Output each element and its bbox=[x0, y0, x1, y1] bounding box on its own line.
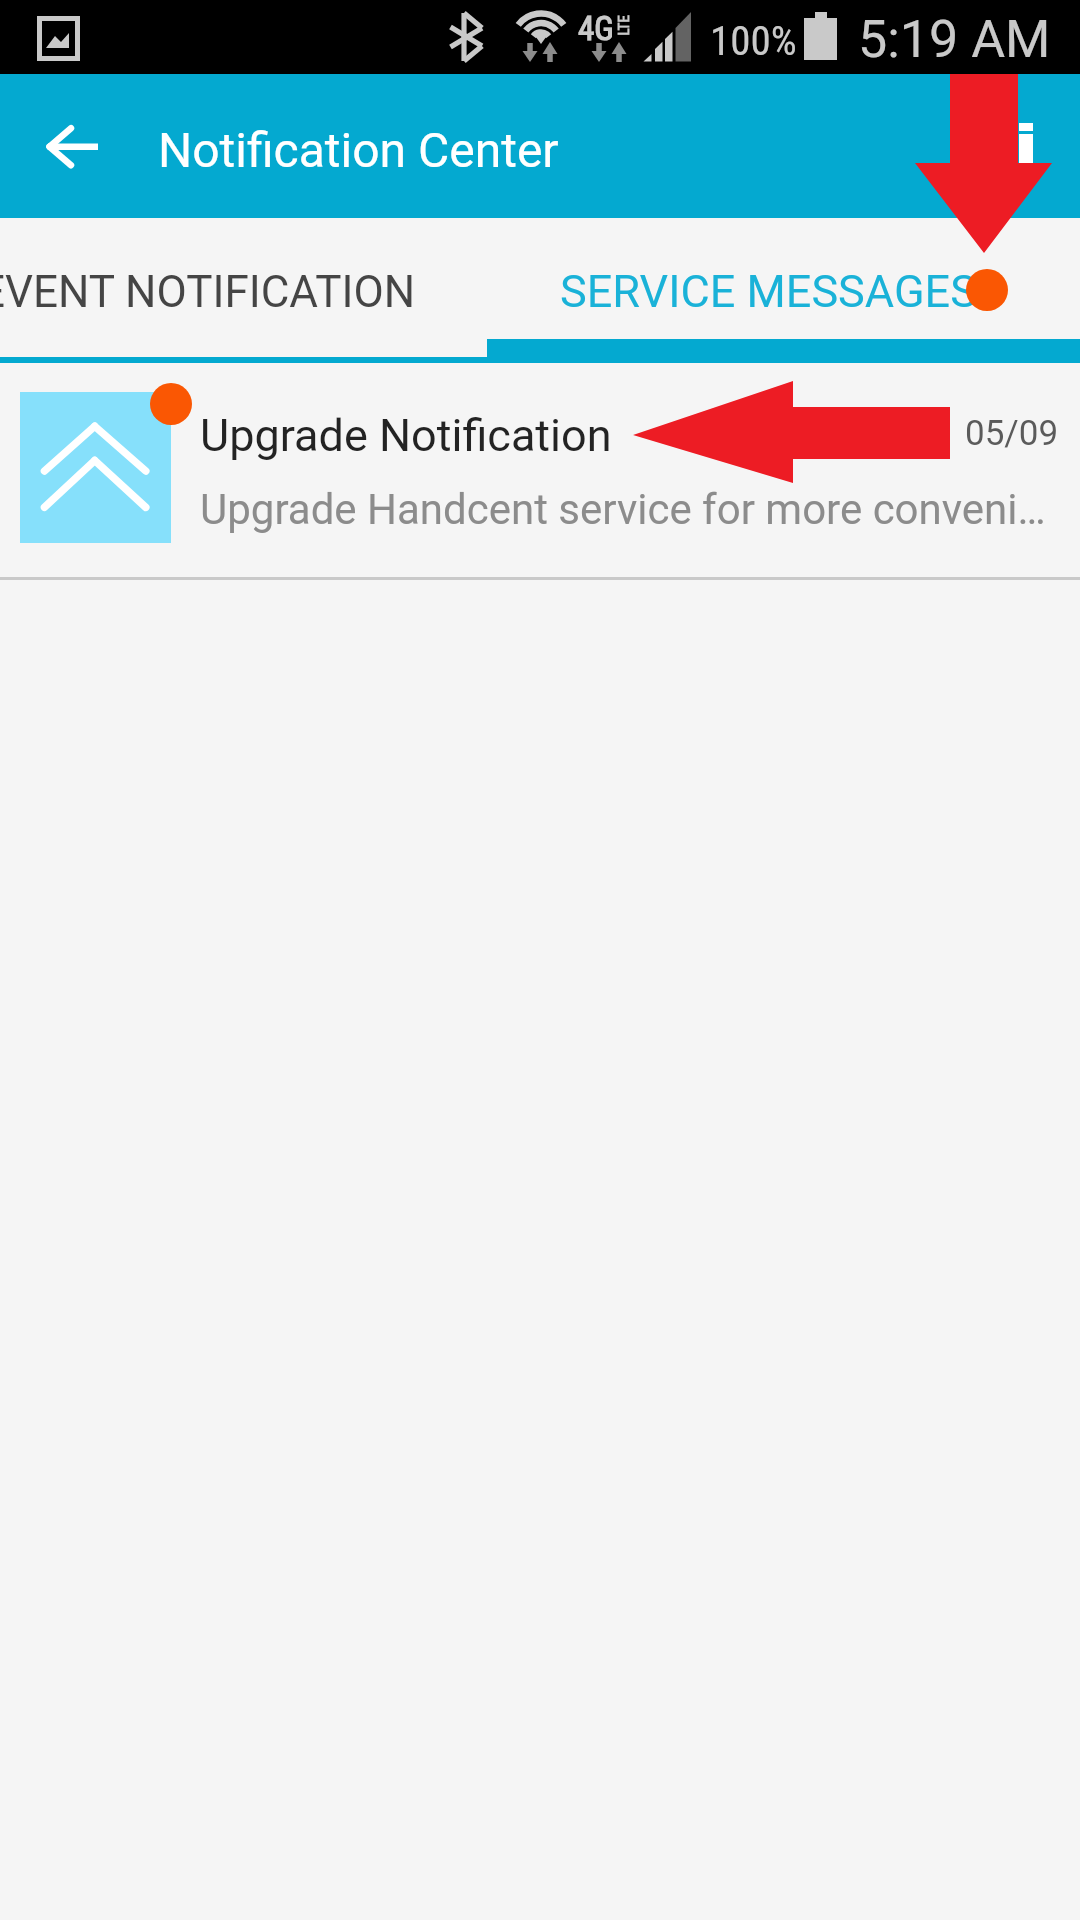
staticText: LTE bbox=[614, 14, 632, 35]
staticText: Notification Center bbox=[158, 122, 559, 178]
staticText: 4G bbox=[578, 9, 614, 48]
staticText: 100% bbox=[710, 17, 797, 65]
staticText: 05/09 bbox=[965, 413, 1059, 454]
button[interactable]: More options bbox=[990, 106, 1070, 186]
button[interactable]: Back bbox=[24, 94, 124, 194]
button[interactable]: SERVICE MESSAGES bbox=[487, 218, 1080, 357]
button[interactable]: Upgrade Notification bbox=[0, 363, 1080, 580]
staticText: EVENT NOTIFICATION bbox=[0, 266, 416, 318]
button[interactable]: EVENT NOTIFICATION bbox=[0, 218, 487, 357]
staticText: Upgrade Notification bbox=[200, 409, 612, 462]
staticText: SERVICE MESSAGES bbox=[560, 265, 977, 318]
staticText: 5:19 AM bbox=[858, 9, 1051, 70]
staticText: Upgrade Handcent service for more conven… bbox=[200, 485, 1046, 534]
